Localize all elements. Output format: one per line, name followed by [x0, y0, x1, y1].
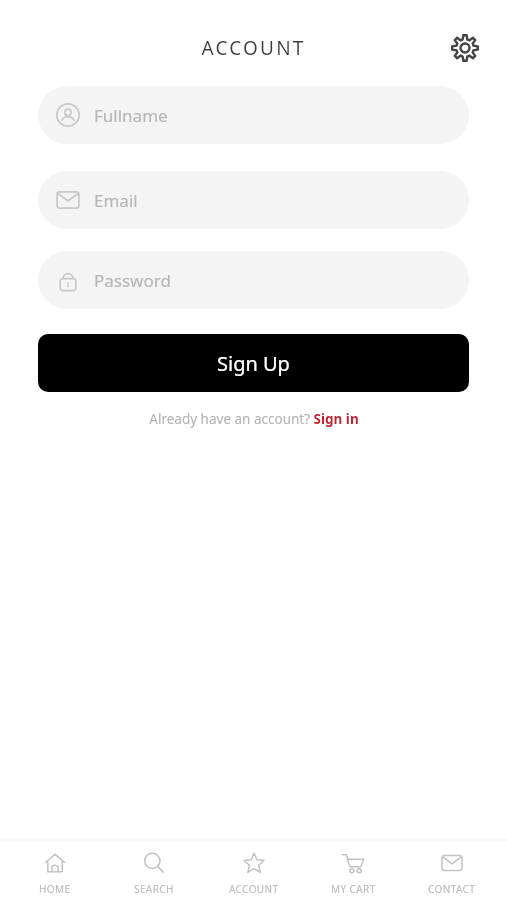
- button[interactable]: Sign Up: [38, 334, 469, 392]
- button[interactable]: Already have an account? Sign in: [143, 408, 365, 430]
- staticText: ACCOUNT: [201, 35, 306, 61]
- button[interactable]: Fullname: [38, 86, 469, 144]
- button[interactable]: Password: [38, 251, 469, 309]
- button[interactable]: ACCOUNT: [210, 840, 298, 900]
- staticText: Already have an account? Sign in: [149, 410, 359, 428]
- staticText: Fullname: [94, 104, 168, 127]
- button[interactable]: CONTACT: [408, 840, 496, 900]
- staticText: CONTACT: [428, 882, 476, 896]
- staticText: SEARCH: [134, 882, 174, 896]
- button[interactable]: HOME: [11, 840, 99, 900]
- button[interactable]: MY CART: [309, 840, 397, 900]
- button[interactable]: Settings: [445, 28, 485, 68]
- staticText: Email: [94, 189, 138, 212]
- button[interactable]: Email: [38, 171, 469, 229]
- staticText: MY CART: [331, 882, 376, 896]
- staticText: Sign Up: [217, 350, 290, 377]
- staticText: Password: [94, 269, 171, 292]
- staticText: HOME: [39, 882, 71, 896]
- staticText: ACCOUNT: [229, 882, 279, 896]
- button[interactable]: SEARCH: [110, 840, 198, 900]
